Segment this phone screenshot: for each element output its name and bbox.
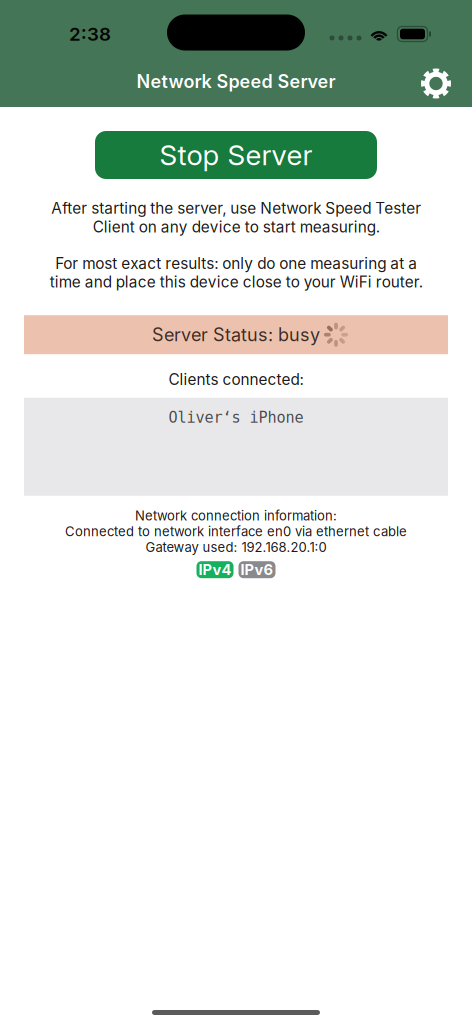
button[interactable]: Stop Server xyxy=(95,131,377,179)
staticText: Gateway used: 192.168.20.1:0 xyxy=(145,539,326,555)
button[interactable]: Settings xyxy=(414,58,458,104)
staticText: Oliver‘s iPhone xyxy=(168,409,303,426)
staticText: Clients connected: xyxy=(168,370,303,389)
staticText: Server Status: busy xyxy=(152,324,320,346)
staticText: 2:38 xyxy=(69,23,111,45)
staticText: After starting the server, use Network S… xyxy=(51,199,421,236)
staticText: For most exact results: only do one meas… xyxy=(49,254,422,291)
staticText: Network connection information: xyxy=(135,508,337,524)
staticText: Network Speed Server xyxy=(136,71,335,92)
staticText: IPv6 xyxy=(240,561,273,578)
staticText: Stop Server xyxy=(159,138,312,172)
staticText: IPv4 xyxy=(198,561,231,578)
staticText: Connected to network interface en0 via e… xyxy=(65,524,407,539)
